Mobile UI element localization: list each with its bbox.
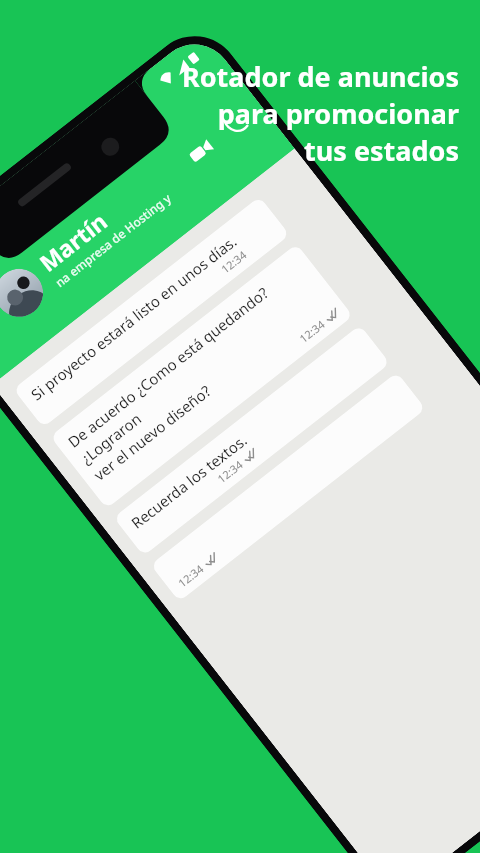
staticText: 12:34 <box>214 456 246 486</box>
staticText: tus estados <box>304 132 459 169</box>
staticText: Si proyecto estará listo en unos días. <box>27 231 241 404</box>
staticText: Martín <box>32 205 113 278</box>
button[interactable]: Video call <box>169 120 231 182</box>
button[interactable]: Voice call <box>204 93 266 155</box>
button[interactable]: Si proyecto estará listo en unos días. <box>13 196 290 428</box>
staticText: 12:34 <box>218 247 250 276</box>
button[interactable]: Recuerda los textos. <box>113 325 390 556</box>
staticText: Rotador de anuncios <box>182 58 459 95</box>
button[interactable]: 12:34 <box>150 372 426 602</box>
button[interactable]: Profile photo <box>0 259 53 327</box>
staticText: para promocionar <box>217 95 459 132</box>
button[interactable]: Back <box>0 289 14 354</box>
staticText: na empresa de Hosting y Desarro <box>52 171 198 290</box>
staticText: Recuerda los textos. <box>127 430 251 533</box>
button[interactable]: Martín <box>32 147 198 290</box>
staticText: 12:34 <box>296 316 328 346</box>
button[interactable]: De acuerdo ¿Como está quedando? ¿Lograro… <box>50 244 353 509</box>
staticText: 12:34 <box>175 561 207 590</box>
staticText: De acuerdo ¿Como está quedando? ¿Lograro… <box>63 255 333 485</box>
